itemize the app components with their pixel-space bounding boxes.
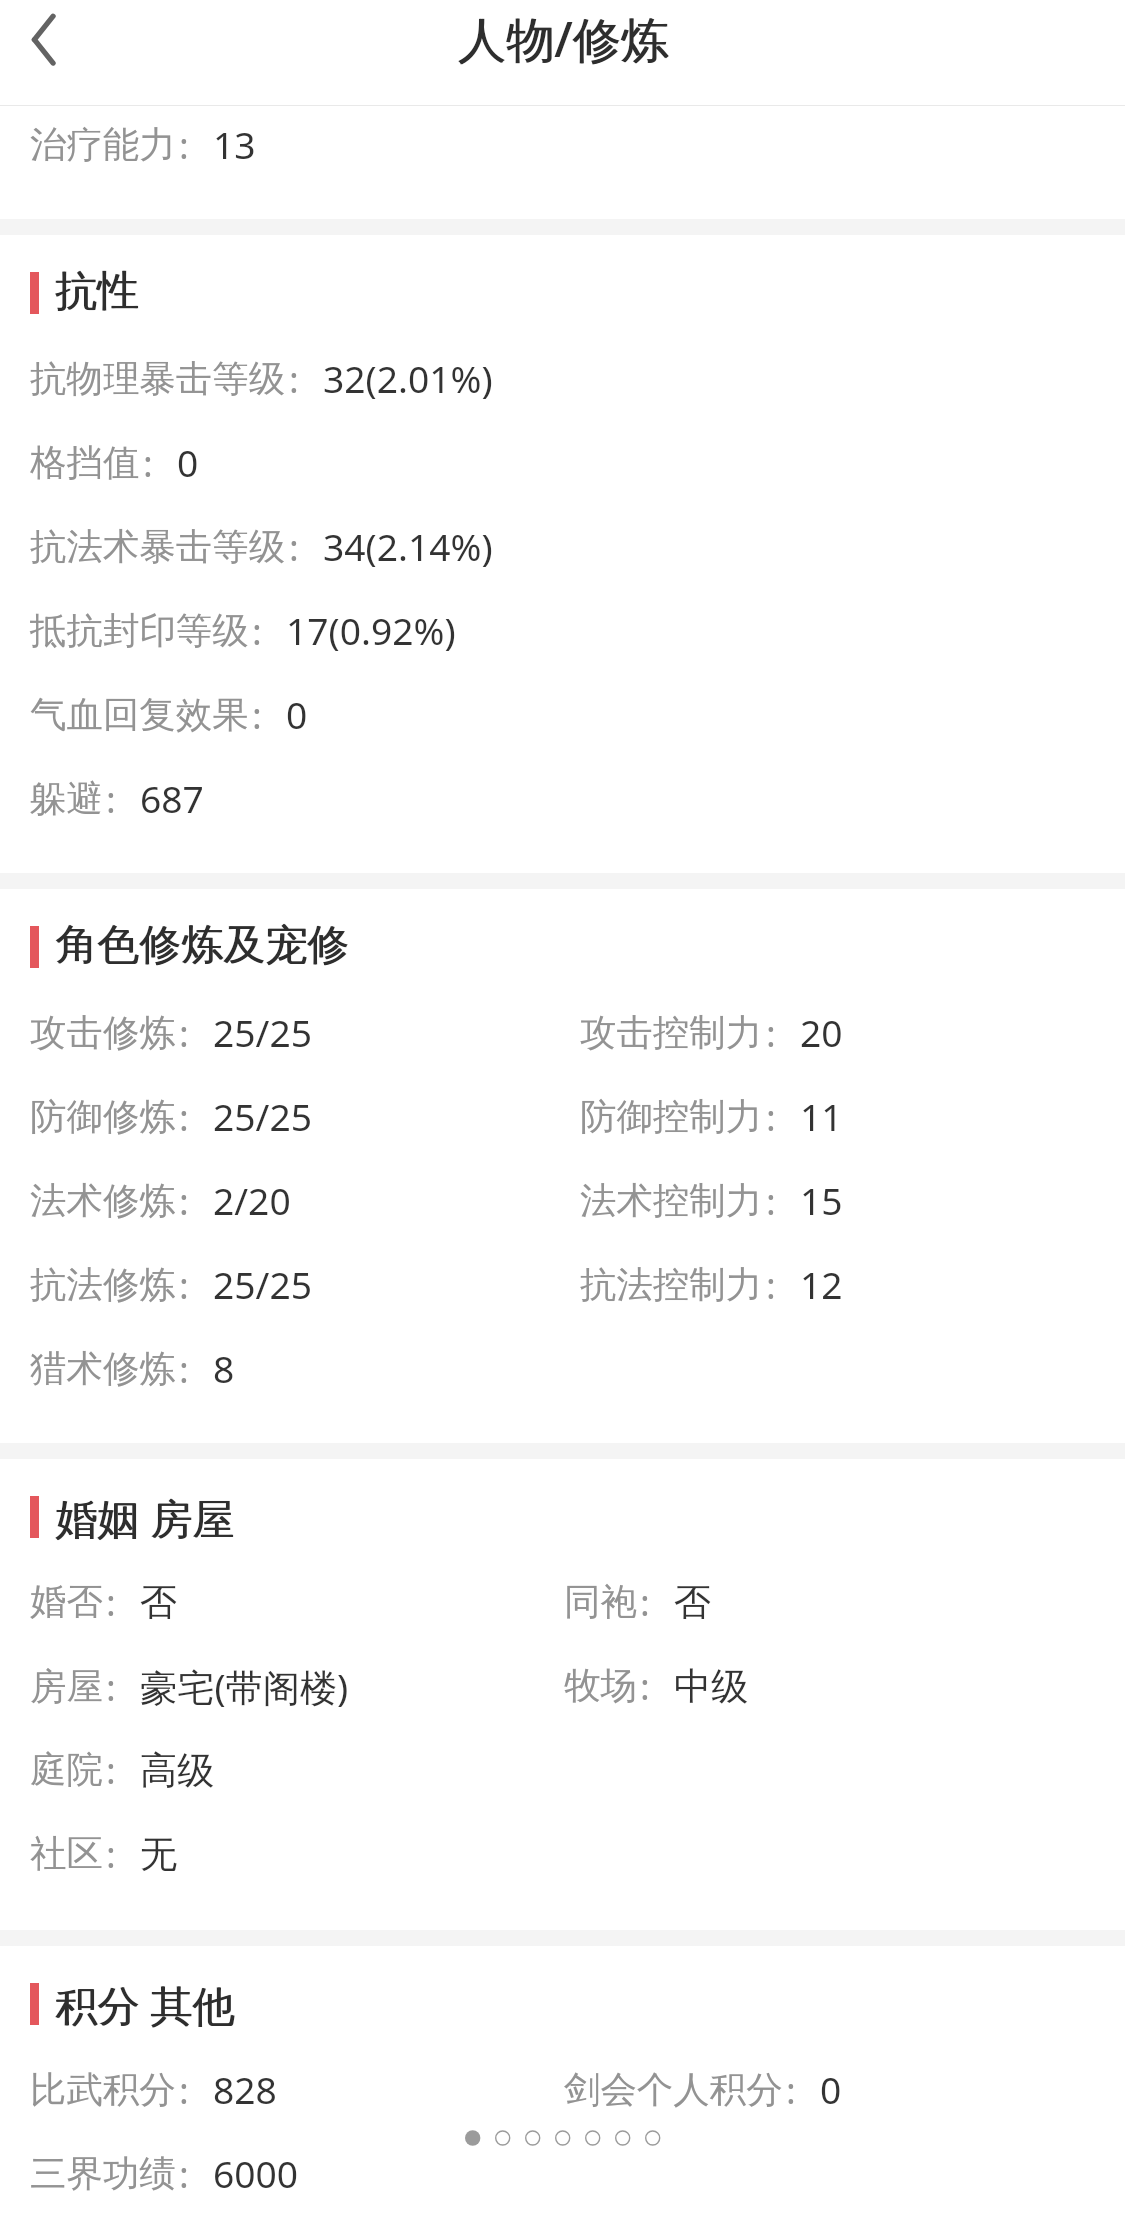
staticText: 牧场 bbox=[564, 1663, 637, 1709]
staticText: : bbox=[179, 1008, 189, 1058]
staticText: 积分 其他 bbox=[56, 1976, 235, 2033]
staticText: : bbox=[106, 1662, 116, 1712]
staticText: 25/25 bbox=[213, 1007, 312, 1058]
staticText: 20 bbox=[800, 1007, 843, 1058]
staticText: 高级 bbox=[140, 1747, 215, 1794]
button[interactable]: 攻击修炼 bbox=[0, 990, 1125, 1074]
staticText: : bbox=[179, 2149, 189, 2199]
staticText: 人物/修炼 bbox=[458, 5, 670, 71]
staticText: : bbox=[766, 1260, 776, 1310]
staticText: 34(2.14%) bbox=[323, 521, 493, 572]
staticText: 攻击修炼 bbox=[30, 1010, 176, 1056]
staticText: 法术修炼 bbox=[30, 1178, 176, 1224]
staticText: 庭院 bbox=[30, 1747, 103, 1793]
staticText: 6000 bbox=[213, 2148, 299, 2199]
staticText: : bbox=[179, 1260, 189, 1310]
staticText: 25/25 bbox=[213, 1091, 312, 1142]
staticText: 婚姻 房屋 bbox=[55, 1489, 234, 1546]
staticText: : bbox=[179, 2065, 189, 2115]
staticText: 无 bbox=[140, 1831, 178, 1878]
button[interactable]: 社区 bbox=[0, 1812, 1125, 1896]
button[interactable]: 法术修炼 bbox=[0, 1158, 1125, 1242]
staticText: 三界功绩 bbox=[30, 2151, 176, 2197]
staticText: : bbox=[106, 1745, 116, 1795]
staticText: 人物/修炼 bbox=[457, 5, 669, 71]
staticText: 12 bbox=[800, 1259, 843, 1310]
staticText: : bbox=[106, 1829, 116, 1879]
button[interactable]: 庭院 bbox=[0, 1728, 1125, 1812]
staticText: : bbox=[143, 438, 153, 488]
staticText: : bbox=[106, 774, 116, 824]
staticText: 气血回复效果 bbox=[30, 692, 249, 738]
staticText: : bbox=[179, 1092, 189, 1142]
staticText: 抗性 bbox=[56, 265, 140, 318]
staticText: 0 bbox=[820, 2064, 842, 2115]
staticText: 防御修炼 bbox=[30, 1094, 176, 1140]
staticText: 2/20 bbox=[213, 1175, 291, 1226]
staticText: : bbox=[766, 1008, 776, 1058]
staticText: 11 bbox=[800, 1091, 843, 1142]
staticText: 抗法术暴击等级 bbox=[30, 524, 286, 570]
button[interactable]: 婚否 bbox=[0, 1560, 1125, 1644]
button[interactable]: 治疗能力 bbox=[0, 106, 1125, 182]
staticText: 687 bbox=[140, 773, 204, 824]
button[interactable]: 抵抗封印等级 bbox=[0, 588, 1125, 672]
staticText: 否 bbox=[674, 1579, 712, 1626]
staticText: 25/25 bbox=[213, 1259, 312, 1310]
staticText: 格挡值 bbox=[30, 440, 140, 486]
staticText: 治疗能力 bbox=[30, 122, 176, 168]
staticText: : bbox=[786, 2065, 796, 2115]
staticText: : bbox=[179, 120, 189, 170]
staticText: 法术控制力 bbox=[580, 1178, 763, 1224]
button[interactable]: 躲避 bbox=[0, 756, 1125, 840]
staticText: 躲避 bbox=[30, 776, 103, 822]
staticText: : bbox=[106, 1577, 116, 1627]
button[interactable]: 格挡值 bbox=[0, 420, 1125, 504]
staticText: 32(2.01%) bbox=[323, 353, 493, 404]
button[interactable]: 比武积分 bbox=[0, 2047, 1125, 2131]
button[interactable]: 气血回复效果 bbox=[0, 672, 1125, 756]
staticText: 15 bbox=[800, 1175, 843, 1226]
staticText: 抗物理暴击等级 bbox=[30, 356, 286, 402]
button[interactable]: 房屋 bbox=[0, 1644, 1125, 1728]
staticText: 抵抗封印等级 bbox=[30, 608, 249, 654]
staticText: : bbox=[766, 1092, 776, 1142]
button[interactable]: Back bbox=[10, 5, 80, 75]
staticText: 防御控制力 bbox=[580, 1094, 763, 1140]
staticText: 婚否 bbox=[30, 1579, 103, 1625]
staticText: 中级 bbox=[674, 1663, 749, 1710]
staticText: 13 bbox=[213, 119, 256, 170]
staticText: 角色修炼及宠修 bbox=[56, 919, 350, 972]
staticText: 攻击控制力 bbox=[580, 1010, 763, 1056]
staticText: 828 bbox=[213, 2064, 277, 2115]
button[interactable]: 抗物理暴击等级 bbox=[0, 336, 1125, 420]
staticText: 否 bbox=[140, 1579, 178, 1626]
staticText: 同袍 bbox=[564, 1579, 637, 1625]
staticText: 抗法控制力 bbox=[580, 1262, 763, 1308]
staticText: 剑会个人积分 bbox=[564, 2067, 783, 2113]
staticText: 房屋 bbox=[30, 1664, 103, 1710]
staticText: 婚姻 房屋 bbox=[56, 1489, 235, 1546]
button[interactable]: 猎术修炼 bbox=[0, 1326, 1125, 1410]
staticText: 社区 bbox=[30, 1831, 103, 1877]
staticText: : bbox=[289, 354, 299, 404]
staticText: 0 bbox=[286, 689, 308, 740]
staticText: 抗性 bbox=[55, 265, 139, 318]
staticText: 17(0.92%) bbox=[286, 605, 456, 656]
staticText: 豪宅(带阁楼) bbox=[140, 1661, 349, 1712]
staticText: 比武积分 bbox=[30, 2067, 176, 2113]
button[interactable]: 抗法术暴击等级 bbox=[0, 504, 1125, 588]
staticText: : bbox=[640, 1661, 650, 1711]
staticText: 0 bbox=[177, 437, 199, 488]
button[interactable]: 三界功绩 bbox=[0, 2131, 1125, 2215]
staticText: : bbox=[640, 1577, 650, 1627]
staticText: 抗法修炼 bbox=[30, 1262, 176, 1308]
staticText: 积分 其他 bbox=[55, 1976, 234, 2033]
button[interactable]: 抗法修炼 bbox=[0, 1242, 1125, 1326]
staticText: : bbox=[179, 1176, 189, 1226]
button[interactable]: 防御修炼 bbox=[0, 1074, 1125, 1158]
staticText: 角色修炼及宠修 bbox=[55, 919, 349, 972]
staticText: : bbox=[252, 606, 262, 656]
staticText: : bbox=[179, 1344, 189, 1394]
staticText: 8 bbox=[213, 1343, 235, 1394]
